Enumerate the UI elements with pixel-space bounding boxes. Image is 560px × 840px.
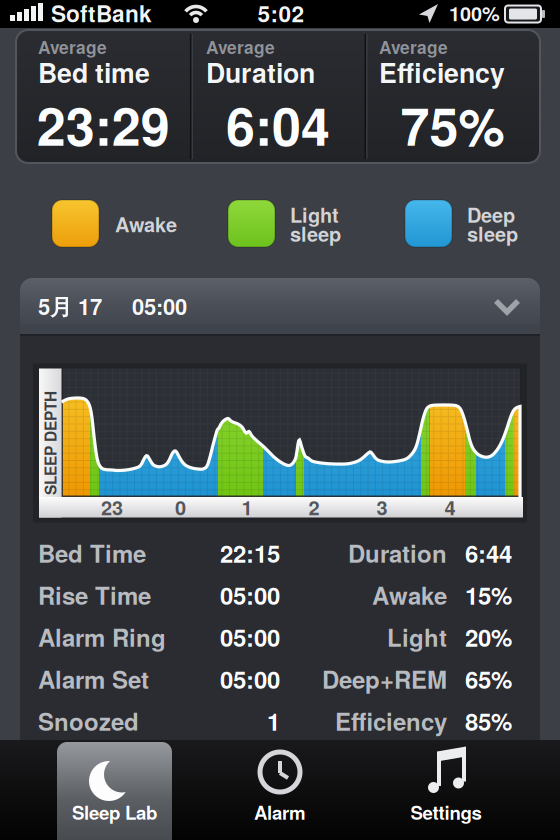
staticText: Alarm [254,799,306,825]
staticText: 65% [465,662,512,696]
staticText: Alarm Ring [38,620,166,654]
staticText: Duration [348,536,447,570]
staticText: 5:02 [257,0,304,29]
staticText: Light [290,200,339,229]
staticText: 05:00 [220,620,280,654]
staticText: Average [206,35,275,59]
staticText: Snoozed [38,704,139,738]
staticText: Average [38,35,107,59]
staticText: Efficiency [335,704,447,738]
staticText: 6:04 [226,87,330,162]
staticText: 2 [308,493,319,521]
staticText: 05:00 [220,578,280,612]
staticText: 75% [401,87,505,162]
staticText: Deep [467,200,515,229]
staticText: 23 [101,493,123,521]
staticText: 85% [465,704,512,738]
staticText: Duration [206,53,315,91]
staticText: 1 [267,704,280,738]
staticText: Deep+REM [322,662,447,696]
staticText: 20% [465,620,512,654]
staticText: 1 [241,493,252,521]
staticText: 5月 17 [38,290,102,322]
staticText: 4 [444,493,455,521]
staticText: Settings [410,799,481,825]
staticText: Sleep Lab [72,799,157,825]
staticText: Alarm Set [38,662,149,696]
staticText: Rise Time [38,578,151,612]
staticText: Bed time [38,53,150,91]
staticText: 3 [376,493,387,521]
staticText: Awake [372,578,447,612]
staticText: Bed Time [38,536,146,570]
button[interactable]: 5月 17 [20,278,540,334]
button[interactable]: Sleep Lab [57,742,172,840]
staticText: SoftBank [51,0,152,29]
staticText: sleep [290,219,341,248]
staticText: Light [387,620,447,654]
staticText: sleep [467,219,518,248]
staticText: Awake [115,210,177,238]
staticText: 100% [449,0,500,27]
staticText: 6:44 [465,536,512,570]
staticText: 22:15 [220,536,280,570]
staticText: 05:00 [132,290,187,322]
staticText: 0 [175,493,186,521]
button[interactable]: Alarm [187,742,373,840]
staticText: 05:00 [220,662,280,696]
staticText: 15% [465,578,512,612]
button[interactable]: Settings [353,742,539,840]
staticText: 23:29 [37,87,170,162]
staticText: SLEEP DEPTH [0,432,102,454]
staticText: Efficiency [379,53,505,91]
staticText: Average [379,35,448,59]
